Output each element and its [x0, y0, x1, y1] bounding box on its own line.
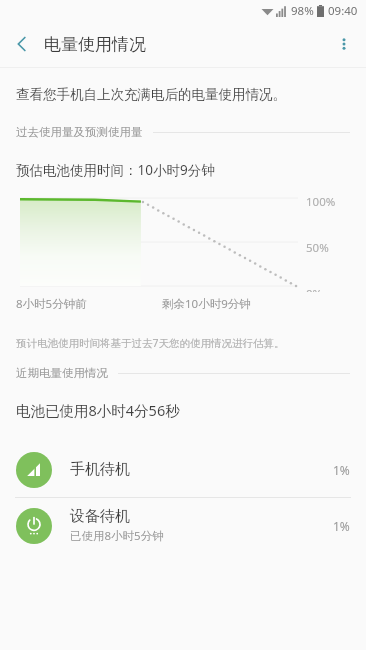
staticText: 查看您手机自上次充满电后的电量使用情况。: [16, 86, 286, 103]
staticText: 电量使用情况: [44, 34, 146, 55]
staticText: 设备待机: [70, 507, 130, 526]
button[interactable]: 手机待机: [0, 442, 366, 497]
staticText: 0%: [306, 286, 350, 292]
staticText: 09:40: [328, 3, 358, 19]
staticText: 已使用8小时5分钟: [70, 528, 164, 544]
staticText: 8小时5分钟前: [16, 296, 87, 312]
staticText: 剩余10小时9分钟: [162, 296, 251, 312]
button[interactable]: Back: [0, 22, 44, 66]
staticText: 近期电量使用情况: [16, 366, 108, 380]
button[interactable]: 设备待机: [0, 498, 366, 553]
staticText: 过去使用量及预测使用量: [16, 125, 143, 139]
staticText: 1%: [333, 518, 350, 534]
staticText: 50%: [306, 240, 350, 256]
staticText: 1%: [333, 462, 350, 478]
staticText: 电池已使用8小时4分56秒: [16, 400, 180, 420]
staticText: 100%: [306, 194, 350, 210]
staticText: 手机待机: [70, 460, 130, 479]
staticText: 预计电池使用时间将基于过去7天您的使用情况进行估算。: [16, 336, 285, 350]
staticText: 98%: [291, 3, 314, 19]
staticText: 预估电池使用时间：10小时9分钟: [16, 161, 215, 179]
button[interactable]: More options: [322, 22, 366, 66]
